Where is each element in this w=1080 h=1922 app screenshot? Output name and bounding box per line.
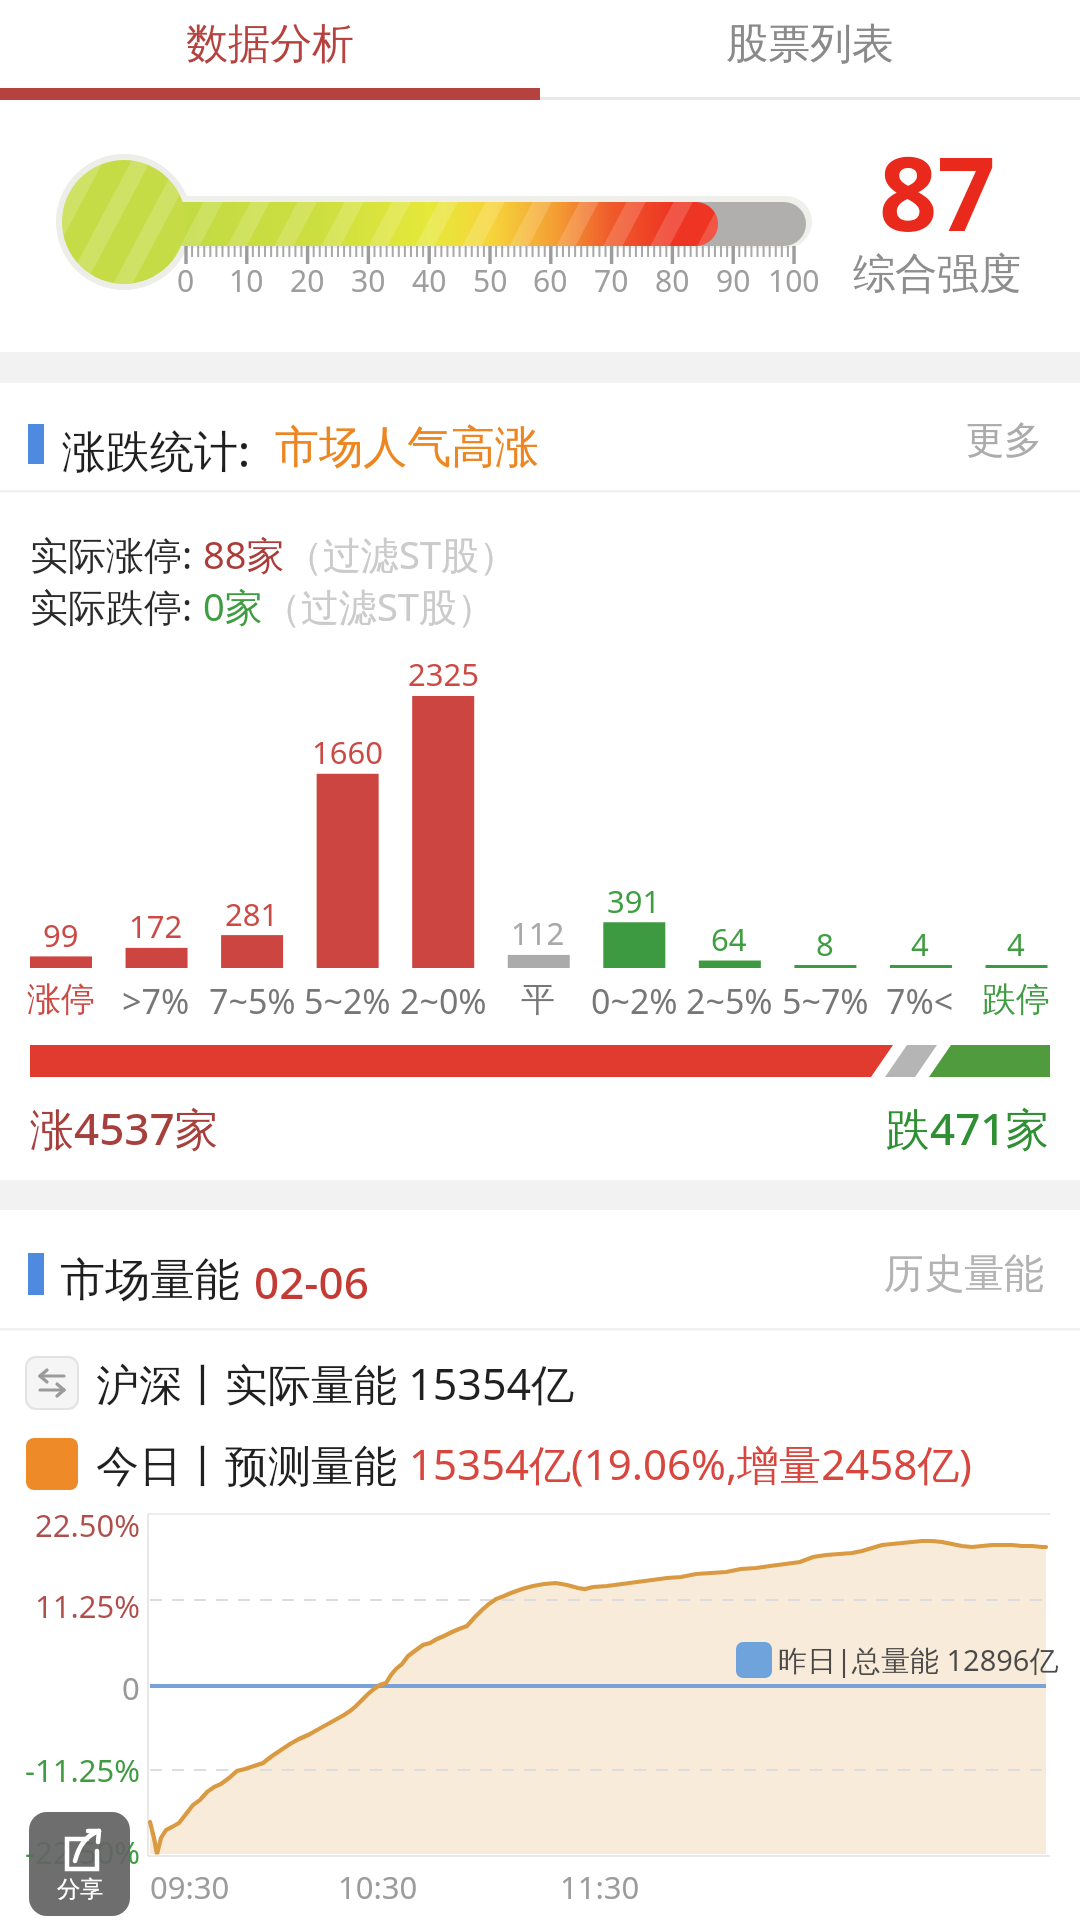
staticText: 88家 [203, 528, 285, 580]
staticText: 11.25% [35, 1585, 140, 1627]
staticText: 4 [1007, 923, 1025, 965]
staticText: 40 [412, 260, 447, 301]
staticText: 112 [511, 912, 565, 954]
staticText: 2~5% [686, 978, 773, 1024]
staticText: 281 [225, 893, 279, 935]
staticText: 5~2% [304, 978, 391, 1024]
staticText: 历史量能 [884, 1248, 1044, 1298]
staticText: 0 [177, 260, 195, 301]
staticText: 10 [229, 260, 264, 301]
staticText: 7%< [886, 978, 954, 1024]
staticText: 0~2% [591, 978, 678, 1024]
button[interactable]: 数据分析 [0, 0, 540, 88]
staticText: 09:30 [150, 1866, 230, 1908]
staticText: 60 [533, 260, 568, 301]
staticText: 10:30 [338, 1866, 418, 1908]
staticText: >7% [122, 978, 190, 1024]
staticText: 20 [290, 260, 325, 301]
button[interactable]: 历史量能 [860, 1242, 1060, 1302]
staticText: 90 [716, 260, 751, 301]
staticText: 涨停 [27, 978, 95, 1021]
staticText: 平 [521, 978, 555, 1021]
staticText: 股票列表 [726, 18, 894, 71]
staticText: 涨4537家 [30, 1098, 219, 1158]
staticText: 2~0% [400, 978, 487, 1024]
staticText: （过滤ST股） [263, 580, 495, 632]
staticText: 8 [816, 923, 834, 965]
staticText: 7~5% [209, 978, 296, 1024]
staticText: 64 [711, 918, 747, 960]
button[interactable]: 股票列表 [540, 0, 1080, 88]
staticText: 30 [351, 260, 386, 301]
staticText: （过滤ST股） [285, 528, 517, 580]
staticText: 50 [473, 260, 508, 301]
staticText: 分享 [57, 1875, 103, 1904]
staticText: 实际涨停: [30, 528, 203, 580]
staticText: 11:30 [560, 1866, 640, 1908]
staticText: 数据分析 [186, 18, 354, 71]
staticText: 5~7% [782, 978, 869, 1024]
staticText: 100 [768, 260, 820, 301]
staticText: 实际跌停: [30, 580, 203, 632]
staticText: 跌停 [982, 978, 1050, 1021]
staticText: 0家 [203, 580, 263, 632]
button[interactable]: 更多 [940, 410, 1060, 470]
staticText: 市场人气高涨 [275, 420, 539, 475]
staticText: -22.50% [25, 1831, 140, 1873]
staticText: 涨跌统计: [62, 420, 250, 480]
staticText: 87 [879, 122, 996, 261]
staticText: 市场量能 [60, 1252, 240, 1309]
staticText: 2325 [408, 653, 479, 695]
staticText: 172 [129, 905, 183, 947]
button[interactable]: 分享 [29, 1812, 130, 1916]
staticText: 跌471家 [886, 1098, 1050, 1158]
staticText: 0 [122, 1667, 140, 1709]
staticText: 昨日|总量能 12896亿 [778, 1640, 1059, 1680]
staticText: 15354亿(19.06%,增量2458亿) [409, 1435, 972, 1492]
staticText: 1660 [312, 731, 383, 773]
staticText: 综合强度 [853, 248, 1021, 301]
staticText: 22.50% [35, 1504, 140, 1546]
staticText: 沪深丨实际量能 15354亿 [96, 1354, 575, 1413]
staticText: 4 [911, 923, 929, 965]
staticText: 02-06 [254, 1252, 369, 1312]
staticText: 391 [607, 880, 661, 922]
staticText: 99 [43, 914, 79, 956]
staticText: -11.25% [25, 1749, 140, 1791]
staticText: 更多 [966, 416, 1042, 464]
staticText: 今日丨预测量能 [96, 1435, 409, 1494]
staticText: 70 [594, 260, 629, 301]
staticText: 80 [655, 260, 690, 301]
